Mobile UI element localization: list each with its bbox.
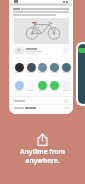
staticText: Anytime from anywhere. <box>0 147 85 165</box>
button[interactable]: Share <box>37 133 48 146</box>
